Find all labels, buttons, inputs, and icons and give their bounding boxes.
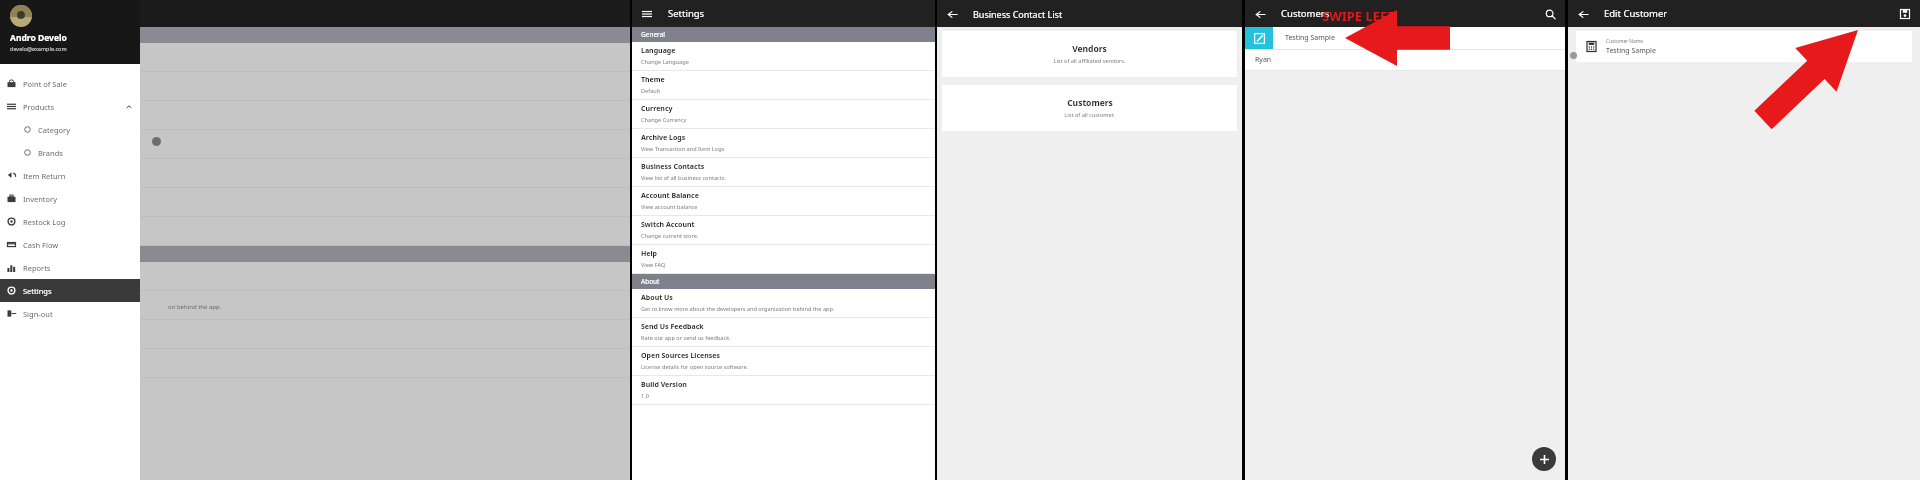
button[interactable]: Cash Flow bbox=[0, 233, 140, 256]
staticText: License details for open source software… bbox=[641, 363, 749, 371]
staticText: Customers bbox=[1067, 97, 1113, 109]
button[interactable]: Products bbox=[0, 95, 140, 118]
button[interactable]: Theme bbox=[632, 71, 935, 99]
staticText: Language bbox=[641, 46, 676, 56]
staticText: List of all affiliated vendors. bbox=[1053, 57, 1126, 65]
staticText: Settings bbox=[23, 286, 52, 296]
staticText: Products bbox=[23, 102, 55, 112]
staticText: Point of Sale bbox=[23, 79, 67, 89]
staticText: Default bbox=[641, 87, 661, 95]
staticText: Change Currency bbox=[641, 116, 687, 124]
button[interactable]: Brands bbox=[0, 141, 140, 164]
button[interactable]: Ryan bbox=[1245, 50, 1565, 70]
staticText: Restock Log bbox=[23, 217, 66, 227]
staticText: Change current store. bbox=[641, 232, 699, 240]
staticText: Change Language bbox=[641, 58, 689, 66]
staticText: develo@example.com bbox=[10, 45, 67, 52]
button[interactable]: Search bbox=[1543, 7, 1557, 21]
button[interactable]: Business Contacts bbox=[632, 158, 935, 186]
staticText: Edit Customer bbox=[1604, 7, 1668, 20]
staticText: About Us bbox=[641, 293, 673, 303]
staticText: Account Balance bbox=[641, 191, 699, 201]
staticText: Business Contacts bbox=[641, 162, 705, 172]
staticText: Rate our app or send us feedback. bbox=[641, 334, 731, 342]
button[interactable]: Back bbox=[945, 7, 959, 21]
staticText: Build Version bbox=[641, 380, 687, 390]
staticText: Switch Account bbox=[641, 220, 695, 230]
staticText: SWIPE LEFT bbox=[1322, 7, 1395, 25]
button[interactable]: Inventory bbox=[0, 187, 140, 210]
button[interactable]: Back bbox=[1253, 7, 1267, 21]
staticText: Category bbox=[38, 125, 70, 135]
staticText: Settings bbox=[668, 7, 705, 20]
staticText: List of all customer. bbox=[1064, 111, 1115, 119]
staticText: Archive Logs bbox=[641, 133, 686, 143]
button[interactable]: Restock Log bbox=[0, 210, 140, 233]
staticText: General bbox=[641, 30, 665, 39]
staticText: View list of all business contacts. bbox=[641, 174, 726, 182]
button[interactable]: Currency bbox=[632, 100, 935, 128]
staticText: Item Return bbox=[23, 171, 66, 181]
staticText: Sign-out bbox=[23, 309, 53, 319]
button[interactable]: Settings bbox=[0, 279, 140, 302]
button[interactable]: Open Sources Licenses bbox=[632, 347, 935, 375]
button[interactable]: Build Version bbox=[632, 376, 935, 404]
staticText: on behind the app. bbox=[168, 303, 222, 311]
staticText: Currency bbox=[641, 104, 673, 114]
staticText: Help bbox=[641, 249, 658, 259]
staticText: Open Sources Licenses bbox=[641, 351, 720, 361]
staticText: Testing Sample bbox=[1285, 33, 1335, 43]
staticText: 1.0 bbox=[641, 392, 649, 400]
button[interactable]: Sign-out bbox=[0, 302, 140, 325]
button[interactable]: Back bbox=[1576, 7, 1590, 21]
staticText: Send Us Feedback bbox=[641, 322, 704, 332]
staticText: View FAQ bbox=[641, 261, 666, 269]
button[interactable]: Item Return bbox=[0, 164, 140, 187]
button[interactable]: Point of Sale bbox=[0, 72, 140, 95]
button[interactable]: Category bbox=[0, 118, 140, 141]
button[interactable]: Save bbox=[1898, 7, 1912, 21]
staticText: Reports bbox=[23, 263, 51, 273]
button[interactable]: Archive Logs bbox=[632, 129, 935, 157]
staticText: Testing Sample bbox=[1606, 46, 1656, 56]
staticText: View Transaction and Item Logs bbox=[641, 145, 725, 153]
staticText: Cash Flow bbox=[23, 240, 59, 250]
button[interactable]: Reports bbox=[0, 256, 140, 279]
button[interactable]: Customer Name bbox=[1576, 31, 1912, 62]
button[interactable]: Vendors bbox=[942, 31, 1237, 77]
button[interactable]: About Us bbox=[632, 289, 935, 317]
staticText: Theme bbox=[641, 75, 665, 85]
button[interactable]: Customers bbox=[942, 85, 1237, 131]
button[interactable]: Send Us Feedback bbox=[632, 318, 935, 346]
staticText: Inventory bbox=[23, 194, 58, 204]
button[interactable]: Edit customer bbox=[1245, 27, 1565, 49]
button[interactable]: Switch Account bbox=[632, 216, 935, 244]
staticText: Business Contact List bbox=[973, 8, 1063, 20]
staticText: Customer Name bbox=[1606, 38, 1643, 45]
staticText: Ryan bbox=[1255, 55, 1272, 65]
staticText: About bbox=[641, 277, 660, 286]
button[interactable]: Account Balance bbox=[632, 187, 935, 215]
button[interactable]: Help bbox=[632, 245, 935, 273]
button[interactable]: Language bbox=[632, 42, 935, 70]
button[interactable]: Edit customer bbox=[1245, 27, 1273, 49]
staticText: Vendors bbox=[1072, 43, 1107, 55]
staticText: Andro Develo bbox=[10, 32, 67, 44]
staticText: Brands bbox=[38, 148, 63, 158]
button[interactable]: Open navigation menu bbox=[640, 7, 654, 21]
staticText: View account balance bbox=[641, 203, 698, 211]
staticText: Customers bbox=[1281, 7, 1330, 20]
staticText: Get to know more about the developers an… bbox=[641, 305, 835, 313]
button[interactable]: Add customer bbox=[1532, 447, 1556, 471]
